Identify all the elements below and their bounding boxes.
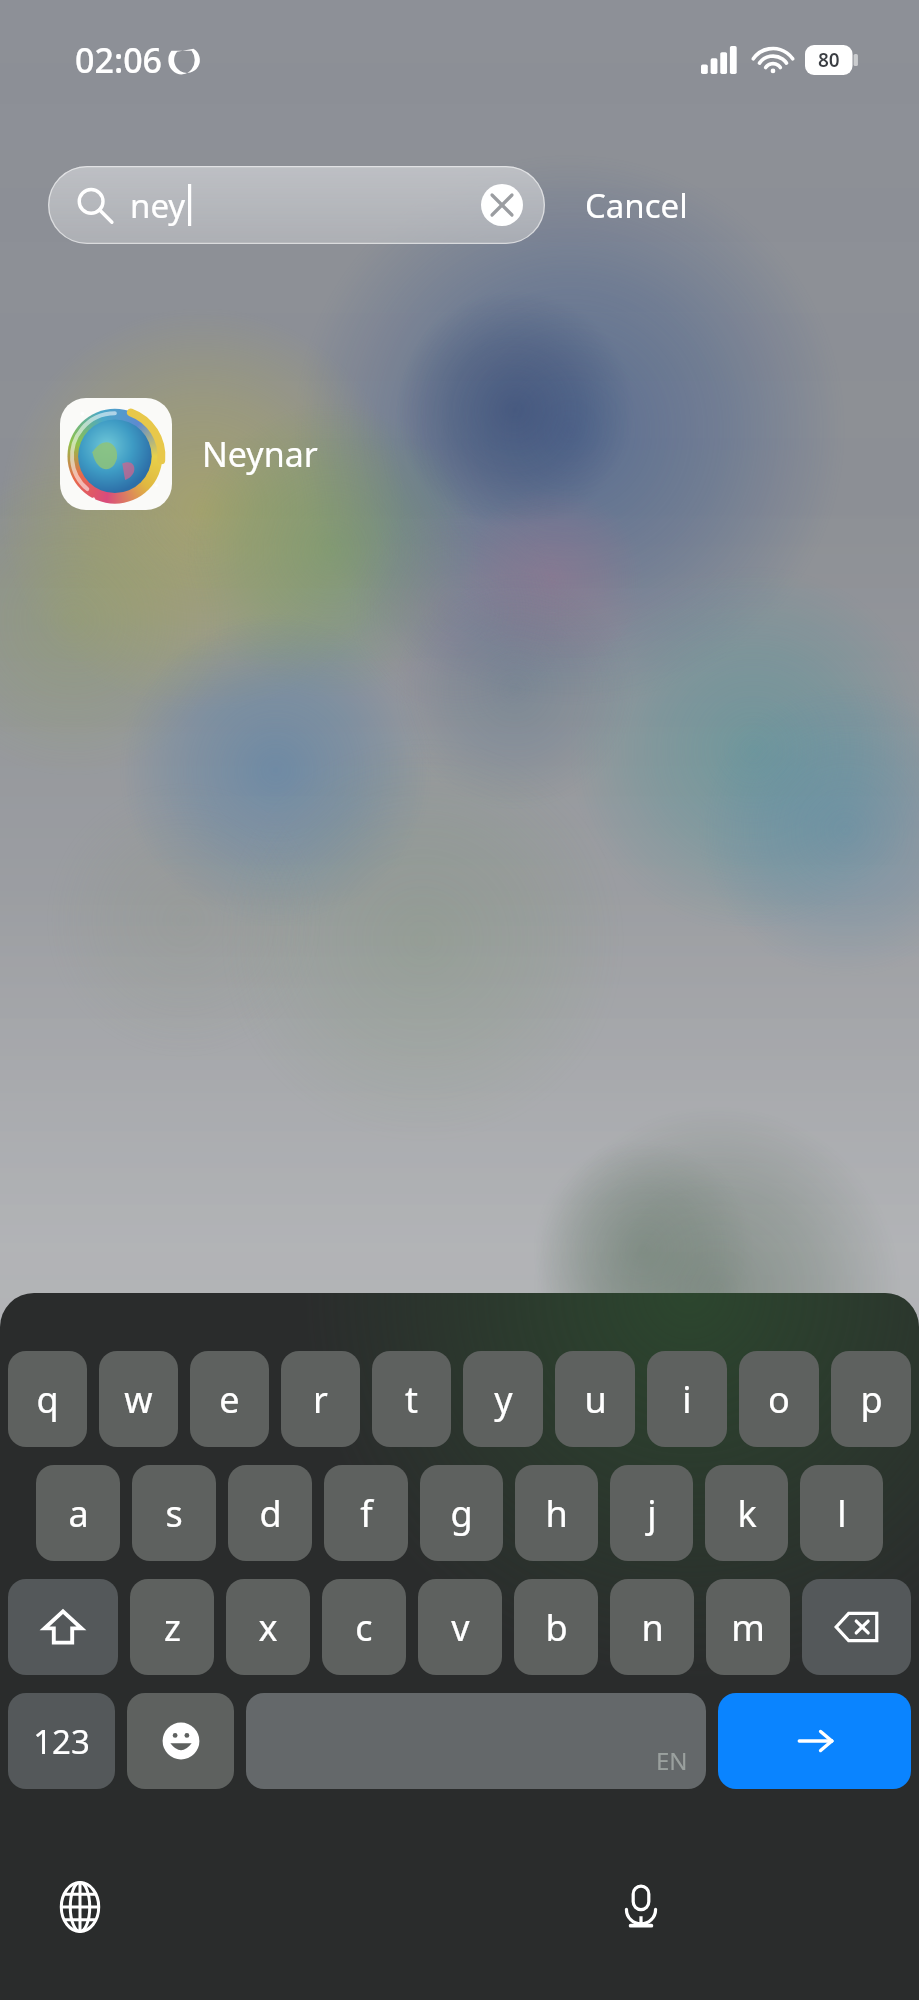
button[interactable]: Change keyboard language bbox=[40, 1867, 120, 1947]
button[interactable]: ney bbox=[48, 166, 545, 244]
button[interactable]: u bbox=[555, 1351, 635, 1447]
button[interactable]: t bbox=[372, 1351, 451, 1447]
staticText: y bbox=[494, 1375, 513, 1424]
button[interactable]: c bbox=[322, 1579, 406, 1675]
button[interactable]: h bbox=[515, 1465, 598, 1561]
staticText: r bbox=[313, 1375, 328, 1424]
button[interactable]: o bbox=[739, 1351, 819, 1447]
staticText: Neynar bbox=[202, 431, 318, 477]
button[interactable]: Shift bbox=[8, 1579, 118, 1675]
button[interactable]: y bbox=[463, 1351, 543, 1447]
button[interactable]: Neynar bbox=[60, 398, 318, 510]
button[interactable]: q bbox=[8, 1351, 87, 1447]
button[interactable]: m bbox=[706, 1579, 790, 1675]
button[interactable]: r bbox=[281, 1351, 360, 1447]
button[interactable]: 123 bbox=[8, 1693, 115, 1789]
button[interactable]: Backspace bbox=[802, 1579, 911, 1675]
staticText: v bbox=[451, 1603, 470, 1652]
staticText: l bbox=[837, 1489, 847, 1538]
staticText: k bbox=[737, 1489, 757, 1538]
staticText: x bbox=[258, 1603, 278, 1652]
button[interactable]: k bbox=[705, 1465, 788, 1561]
button[interactable]: v bbox=[418, 1579, 502, 1675]
staticText: j bbox=[647, 1489, 657, 1538]
staticText: q bbox=[36, 1375, 59, 1424]
staticText: f bbox=[360, 1489, 373, 1538]
staticText: n bbox=[641, 1603, 664, 1652]
staticText: a bbox=[68, 1489, 89, 1538]
staticText: b bbox=[545, 1603, 568, 1652]
staticText: g bbox=[450, 1489, 473, 1538]
button[interactable]: z bbox=[130, 1579, 214, 1675]
button[interactable]: e bbox=[190, 1351, 269, 1447]
staticText: EN bbox=[656, 1744, 688, 1777]
button[interactable]: g bbox=[420, 1465, 503, 1561]
button[interactable]: Clear search bbox=[481, 184, 523, 226]
staticText: i bbox=[682, 1375, 692, 1424]
staticText: h bbox=[545, 1489, 568, 1538]
button[interactable]: w bbox=[99, 1351, 178, 1447]
button[interactable]: d bbox=[228, 1465, 312, 1561]
button[interactable]: Search bbox=[718, 1693, 911, 1789]
button[interactable]: l bbox=[800, 1465, 883, 1561]
button[interactable]: Emoji bbox=[127, 1693, 234, 1789]
staticText: t bbox=[405, 1375, 418, 1424]
button[interactable]: j bbox=[610, 1465, 693, 1561]
staticText: s bbox=[165, 1489, 183, 1538]
staticText: w bbox=[124, 1375, 153, 1424]
staticText: 02:06 bbox=[75, 37, 163, 83]
button[interactable]: a bbox=[36, 1465, 120, 1561]
staticText: e bbox=[219, 1375, 240, 1424]
button[interactable]: Voice input bbox=[601, 1867, 681, 1947]
staticText: o bbox=[768, 1375, 790, 1424]
button[interactable]: Space bbox=[246, 1693, 706, 1789]
staticText: 123 bbox=[33, 1719, 90, 1764]
staticText: d bbox=[259, 1489, 282, 1538]
button[interactable]: n bbox=[610, 1579, 694, 1675]
staticText: p bbox=[860, 1375, 883, 1424]
staticText: Cancel bbox=[585, 183, 688, 228]
staticText: u bbox=[584, 1375, 607, 1424]
staticText: z bbox=[164, 1603, 181, 1652]
button[interactable]: p bbox=[831, 1351, 911, 1447]
button[interactable]: Cancel bbox=[579, 173, 694, 238]
button[interactable]: i bbox=[647, 1351, 727, 1447]
staticText: 80 bbox=[818, 47, 840, 73]
button[interactable]: s bbox=[132, 1465, 216, 1561]
staticText: m bbox=[731, 1603, 765, 1652]
button[interactable]: f bbox=[324, 1465, 408, 1561]
staticText: c bbox=[355, 1603, 373, 1652]
staticText: ney bbox=[130, 183, 186, 228]
button[interactable]: b bbox=[514, 1579, 598, 1675]
button[interactable]: x bbox=[226, 1579, 310, 1675]
